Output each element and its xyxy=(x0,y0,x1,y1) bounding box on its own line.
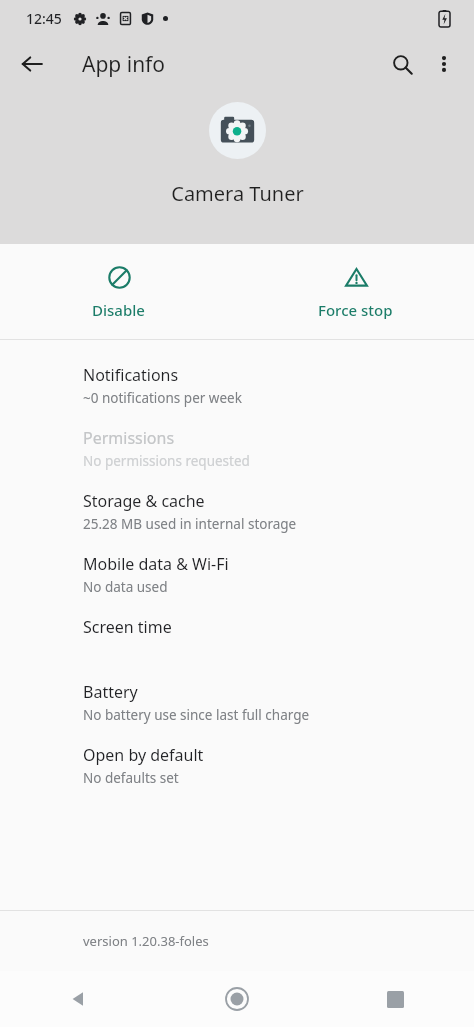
staticText: version 1.20.38-foles xyxy=(83,932,209,950)
button[interactable]: Back xyxy=(10,42,54,86)
staticText: No permissions requested xyxy=(83,452,250,470)
staticText: Notifications xyxy=(83,364,179,386)
staticText: Storage & cache xyxy=(83,490,205,512)
button[interactable]: More options xyxy=(424,44,464,84)
staticText: No battery use since last full charge xyxy=(83,706,310,724)
staticText: No data used xyxy=(83,578,168,596)
button[interactable]: Open by default xyxy=(0,734,474,797)
button[interactable]: Battery xyxy=(0,671,474,734)
button[interactable]: Disable xyxy=(0,244,237,340)
staticText: Battery xyxy=(83,681,138,703)
staticText: Permissions xyxy=(83,427,175,449)
button[interactable]: Search xyxy=(380,42,424,86)
staticText: Disable xyxy=(92,300,145,320)
button[interactable]: Home xyxy=(158,971,316,1027)
button[interactable]: Back xyxy=(0,971,158,1027)
staticText: Camera Tuner xyxy=(171,180,304,207)
button[interactable]: Storage & cache xyxy=(0,480,474,543)
button[interactable]: Notifications xyxy=(0,354,474,417)
staticText: 25.28 MB used in internal storage xyxy=(83,515,297,533)
button[interactable]: Screen time xyxy=(0,606,474,671)
staticText: Force stop xyxy=(318,300,393,320)
staticText: Screen time xyxy=(83,616,172,638)
staticText: Mobile data & Wi-Fi xyxy=(83,553,229,575)
staticText: App info xyxy=(82,50,166,79)
button[interactable]: Recent apps xyxy=(316,971,474,1027)
staticText: Open by default xyxy=(83,744,204,766)
staticText: 12:45 xyxy=(26,9,62,28)
button[interactable]: Force stop xyxy=(237,244,474,340)
button[interactable]: Permissions xyxy=(0,417,474,480)
staticText: No defaults set xyxy=(83,769,179,787)
staticText: ~0 notifications per week xyxy=(83,389,242,407)
button[interactable]: Mobile data & Wi-Fi xyxy=(0,543,474,606)
